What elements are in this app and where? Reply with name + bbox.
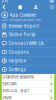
button[interactable]: Menu	[48, 3, 56, 10]
button[interactable]: Home	[17, 3, 24, 10]
button[interactable]: Online Portal	[0, 31, 56, 39]
button[interactable]: Account	[32, 3, 39, 10]
staticText: Eye care	[2, 82, 16, 86]
button[interactable]: Fever	[0, 95, 56, 100]
staticText: Digestive problems	[2, 75, 34, 79]
staticText: First Aid - Burn	[2, 89, 29, 93]
staticText: Fever	[2, 95, 11, 100]
staticText: Online Portal	[8, 32, 35, 37]
button[interactable]: Eye care	[0, 81, 56, 88]
staticText: Review Report	[8, 23, 38, 29]
staticText: Helpline	[8, 58, 26, 63]
button[interactable]: Coupons	[0, 48, 56, 57]
button[interactable]: Helpline	[0, 57, 56, 65]
staticText: user@example.com	[9, 18, 41, 22]
staticText: Settings	[8, 67, 25, 72]
button[interactable]: Connect With Us	[0, 39, 56, 48]
button[interactable]: Review Report	[0, 22, 56, 31]
staticText: 9:41	[2, 0, 8, 3]
button[interactable]: Digestive problems	[0, 74, 56, 81]
staticText: Edit	[2, 18, 8, 21]
button[interactable]: Settings	[0, 65, 56, 74]
staticText: Connect With Us	[8, 41, 43, 46]
button[interactable]: Back	[0, 3, 8, 10]
staticText: Coupons	[8, 49, 28, 55]
staticText: App Container	[9, 13, 36, 18]
button[interactable]: First Aid - Burn	[0, 88, 56, 94]
